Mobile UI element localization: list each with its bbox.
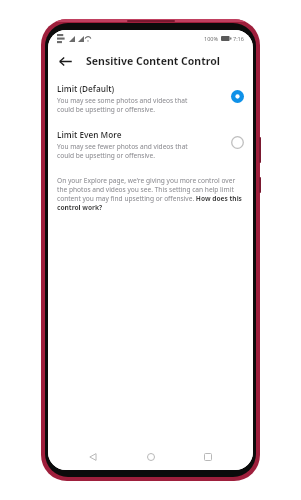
staticText: Limit (Default) bbox=[57, 83, 115, 94]
staticText: 7:16 bbox=[233, 35, 244, 42]
staticText: 100% bbox=[204, 35, 219, 42]
button[interactable]: Home bbox=[138, 444, 164, 470]
staticText: Limit Even More bbox=[57, 129, 122, 140]
staticText: You may see some photos and videos that … bbox=[57, 96, 188, 114]
button[interactable]: Back bbox=[54, 50, 76, 72]
button[interactable]: Back bbox=[80, 444, 106, 470]
button[interactable]: Recent apps bbox=[195, 444, 221, 470]
button[interactable]: Limit (Default) bbox=[48, 81, 253, 116]
button[interactable]: On your Explore page, we're giving you m… bbox=[48, 176, 253, 212]
staticText: You may see fewer photos and videos that… bbox=[57, 142, 188, 160]
button[interactable]: Limit Even More bbox=[48, 127, 253, 162]
staticText: Sensitive Content Control bbox=[86, 54, 220, 68]
